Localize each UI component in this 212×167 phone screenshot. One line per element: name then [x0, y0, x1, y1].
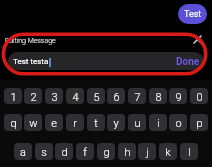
staticText: 0 [196, 91, 203, 104]
button[interactable]: Done [176, 56, 200, 68]
button[interactable]: l [180, 143, 198, 160]
button[interactable]: 1 [4, 88, 22, 104]
staticText: g [103, 146, 110, 159]
staticText: u [134, 117, 141, 130]
staticText: o [175, 117, 182, 130]
button[interactable]: 6 [107, 88, 125, 104]
staticText: 2 [30, 91, 37, 104]
button[interactable]: h [118, 143, 136, 160]
button[interactable]: w [24, 114, 42, 131]
button[interactable]: o [169, 114, 187, 131]
staticText: d [61, 146, 68, 159]
staticText: e [51, 117, 57, 130]
button[interactable]: k [159, 143, 177, 160]
staticText: p [196, 117, 203, 130]
staticText: 7 [134, 91, 141, 104]
button[interactable]: y [107, 114, 125, 131]
staticText: 1 [10, 91, 17, 104]
button[interactable]: Test testa [8, 52, 204, 70]
button[interactable]: 0 [190, 88, 208, 104]
staticText: 6 [113, 91, 120, 104]
button[interactable]: j [138, 143, 156, 160]
staticText: i [157, 117, 160, 130]
button[interactable]: e [45, 114, 63, 131]
staticText: Done [176, 56, 200, 68]
button[interactable]: i [149, 114, 167, 131]
staticText: a [20, 146, 26, 159]
button[interactable]: 4 [66, 88, 84, 104]
button[interactable]: Test [178, 4, 207, 24]
button[interactable]: s [35, 143, 53, 160]
staticText: 8 [155, 91, 162, 104]
button[interactable]: r [66, 114, 84, 131]
staticText: 5 [93, 91, 100, 104]
button[interactable]: u [128, 114, 146, 131]
staticText: 3 [51, 91, 58, 104]
button[interactable]: 9 [169, 88, 187, 104]
staticText: Editing Message [5, 37, 56, 45]
button[interactable]: a [14, 143, 32, 160]
button[interactable]: 8 [149, 88, 167, 104]
staticText: r [73, 117, 77, 130]
button[interactable]: d [55, 143, 73, 160]
button[interactable]: f [76, 143, 94, 160]
button[interactable]: 3 [45, 88, 63, 104]
staticText: 9 [175, 91, 182, 104]
staticText: t [94, 117, 98, 130]
staticText: h [124, 146, 131, 159]
staticText: f [83, 146, 87, 159]
staticText: Test [184, 9, 202, 20]
button[interactable]: 7 [128, 88, 146, 104]
staticText: w [29, 117, 38, 130]
button[interactable]: p [190, 114, 208, 131]
button[interactable]: t [87, 114, 105, 131]
staticText: y [113, 117, 119, 130]
button[interactable]: g [97, 143, 115, 160]
staticText: Test testa [13, 57, 49, 66]
staticText: q [10, 117, 17, 130]
button[interactable]: q [4, 114, 22, 131]
button[interactable]: 5 [87, 88, 105, 104]
button[interactable]: 2 [24, 88, 42, 104]
button[interactable]: Close editing [191, 33, 204, 46]
staticText: k [165, 146, 171, 159]
staticText: 4 [72, 91, 79, 104]
staticText: s [41, 146, 47, 159]
staticText: j [146, 146, 149, 159]
staticText: l [188, 146, 191, 159]
